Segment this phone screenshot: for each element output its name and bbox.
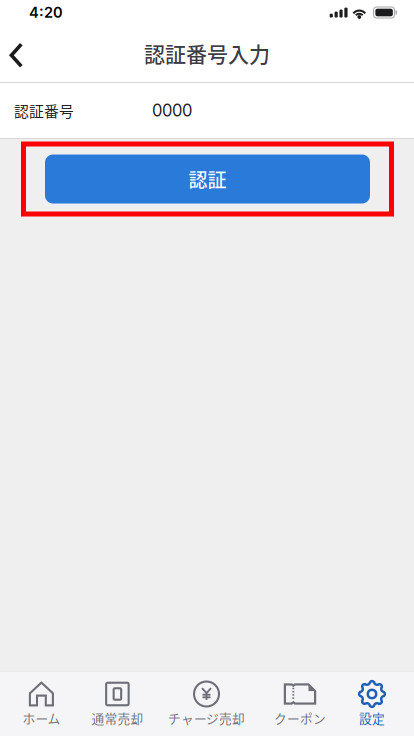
staticText: クーポン (274, 709, 326, 727)
button[interactable]: 設定 (339, 672, 405, 736)
staticText: 認証 (188, 165, 226, 193)
button[interactable]: ホーム (0, 672, 83, 736)
staticText: 認証番号 (14, 100, 74, 121)
staticText: 認証番号入力 (144, 37, 270, 68)
staticText: 通常売却 (91, 709, 143, 727)
button[interactable]: チャージ売却 (152, 672, 261, 736)
button[interactable]: 通常売却 (83, 672, 152, 736)
button[interactable]: Back (0, 23, 43, 82)
staticText: チャージ売却 (168, 709, 245, 727)
staticText: 設定 (359, 709, 385, 727)
staticText: ホーム (22, 709, 60, 727)
staticText: 0000 (152, 100, 192, 121)
staticText: 4:20 (29, 4, 63, 21)
button[interactable]: クーポン (261, 672, 339, 736)
button[interactable]: 認証 (45, 154, 370, 203)
